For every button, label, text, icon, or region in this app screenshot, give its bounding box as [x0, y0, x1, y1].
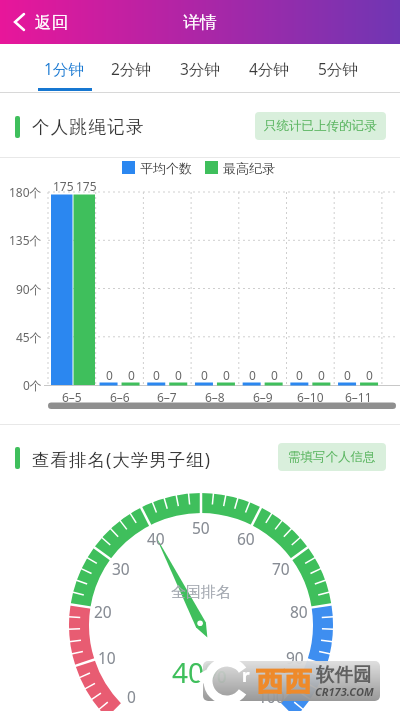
button[interactable]: 5分钟: [304, 44, 372, 92]
staticText: 0: [271, 367, 278, 381]
staticText: 6–6: [110, 389, 130, 402]
button[interactable]: 3分钟: [166, 44, 234, 92]
staticText: 0: [318, 367, 325, 381]
staticText: r: [242, 664, 250, 684]
button[interactable]: 1分钟: [30, 44, 98, 92]
staticText: 全国排名: [171, 583, 231, 602]
staticText: 6–11: [345, 389, 372, 402]
staticText: 100: [258, 686, 285, 704]
staticText: 135个: [9, 232, 42, 248]
staticText: 180个: [9, 184, 42, 200]
staticText: 4分钟: [249, 58, 289, 79]
button[interactable]: 4分钟: [235, 44, 303, 92]
staticText: 0: [127, 686, 136, 704]
staticText: 40: [147, 528, 165, 546]
staticText: 80: [290, 601, 308, 619]
staticText: 0: [296, 367, 303, 381]
staticText: 0: [344, 367, 351, 381]
staticText: 0个: [23, 377, 42, 393]
staticText: 6–5: [62, 389, 82, 402]
staticText: 0: [201, 367, 208, 381]
staticText: 只统计已上传的记录: [264, 118, 377, 134]
staticText: 详情: [183, 12, 217, 33]
staticText: 6–10: [297, 389, 324, 402]
staticText: 0: [106, 367, 113, 381]
staticText: 10: [98, 647, 116, 665]
button[interactable]: 2分钟: [97, 44, 165, 92]
button[interactable]: 需填写个人信息: [278, 443, 386, 471]
staticText: 需填写个人信息: [288, 449, 376, 465]
staticText: 6–9: [253, 389, 273, 402]
staticText: 175: [76, 178, 97, 193]
staticText: 6–7: [157, 389, 177, 402]
staticText: 40%: [172, 653, 228, 683]
staticText: 返回: [35, 12, 68, 32]
staticText: 175: [53, 178, 74, 193]
staticText: 90: [286, 647, 304, 665]
staticText: 45个: [16, 329, 42, 345]
staticText: 0: [366, 367, 373, 381]
staticText: 90个: [16, 281, 42, 297]
staticText: 30: [112, 558, 130, 576]
staticText: 个人跳绳记录: [32, 116, 145, 138]
staticText: 0: [128, 367, 135, 381]
staticText: 60: [237, 528, 255, 546]
staticText: 0: [153, 367, 160, 381]
button[interactable]: 返回: [0, 0, 90, 44]
staticText: 查看排名(大学男子组): [32, 447, 211, 469]
staticText: 软件园: [316, 663, 372, 685]
staticText: 2分钟: [111, 58, 151, 79]
staticText: 20: [94, 601, 112, 619]
staticText: 6–8: [205, 389, 225, 402]
staticText: 3分钟: [180, 58, 220, 79]
staticText: 0: [223, 367, 230, 381]
staticText: 平均个数: [140, 160, 192, 175]
staticText: 5分钟: [318, 58, 358, 79]
staticText: 最高纪录: [223, 160, 275, 175]
staticText: 50: [192, 517, 210, 535]
staticText: 0: [249, 367, 256, 381]
staticText: CR173.COM: [315, 684, 374, 698]
button[interactable]: 只统计已上传的记录: [255, 112, 386, 140]
staticText: 1分钟: [44, 58, 84, 79]
staticText: 70: [272, 558, 290, 576]
staticText: 西西: [256, 665, 312, 694]
staticText: 0: [175, 367, 182, 381]
